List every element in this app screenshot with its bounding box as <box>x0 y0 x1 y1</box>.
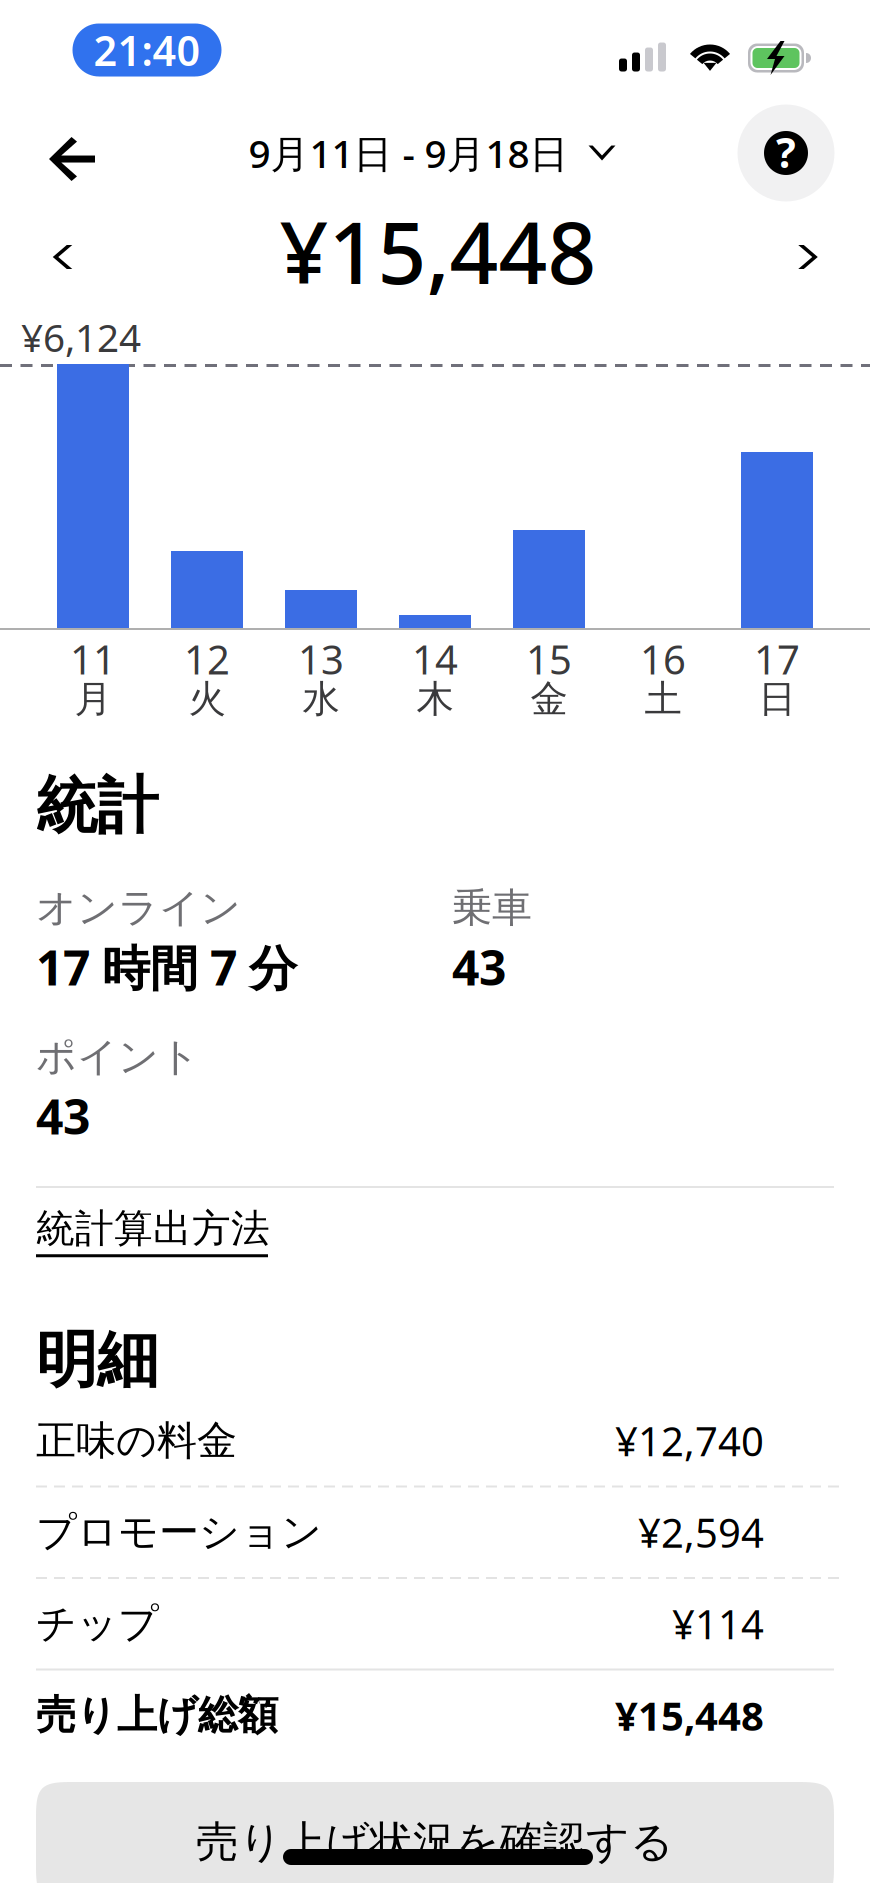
staticText: 15 <box>526 632 572 685</box>
button[interactable]: 9月11日 - 9月18日 <box>248 101 615 205</box>
staticText: 売り上げ状況を確認する <box>196 1816 674 1868</box>
staticText: 9月11日 - 9月18日 <box>248 127 568 179</box>
staticText: 土 <box>644 676 681 722</box>
staticText: 日 <box>758 676 795 722</box>
staticText: 明細 <box>36 1322 158 1398</box>
staticText: 火 <box>188 676 225 722</box>
staticText: ¥15,448 <box>279 194 596 308</box>
staticText: 14 <box>412 632 458 685</box>
staticText: 16 <box>640 632 686 685</box>
staticText: 月 <box>74 676 111 722</box>
staticText: プロモーション <box>36 1508 322 1557</box>
staticText: 13 <box>298 632 344 685</box>
staticText: 12 <box>184 632 230 685</box>
button[interactable]: Next week <box>756 212 860 302</box>
staticText: オンライン <box>36 883 241 932</box>
staticText: ? <box>776 125 796 179</box>
button[interactable]: 統計算出方法 <box>36 1200 834 1262</box>
staticText: 43 <box>452 935 506 999</box>
staticText: 17 時間 7 分 <box>36 935 297 999</box>
staticText: 正味の料金 <box>36 1416 237 1465</box>
button[interactable]: 売り上げ状況を確認する <box>36 1782 834 1883</box>
staticText: ¥12,740 <box>615 1414 764 1467</box>
staticText: 11 <box>70 632 116 685</box>
staticText: ¥114 <box>672 1597 764 1650</box>
staticText: ¥6,124 <box>21 311 141 363</box>
staticText: 統計 <box>36 768 158 844</box>
staticText: 売り上げ総額 <box>36 1691 278 1740</box>
staticText: 43 <box>36 1084 90 1148</box>
staticText: ポイント <box>36 1032 200 1081</box>
staticText: 17 <box>754 632 800 685</box>
staticText: 金 <box>530 676 567 722</box>
staticText: チップ <box>36 1599 159 1648</box>
staticText: 21:40 <box>93 23 200 77</box>
staticText: 乗車 <box>452 883 532 932</box>
button[interactable]: Back <box>16 107 128 211</box>
staticText: 水 <box>302 676 339 722</box>
button[interactable]: Help <box>734 101 838 205</box>
staticText: 統計算出方法 <box>36 1205 270 1252</box>
staticText: 木 <box>416 676 453 722</box>
button[interactable]: Previous week <box>16 212 120 302</box>
staticText: ¥15,448 <box>615 1689 764 1742</box>
staticText: ¥2,594 <box>638 1506 764 1559</box>
